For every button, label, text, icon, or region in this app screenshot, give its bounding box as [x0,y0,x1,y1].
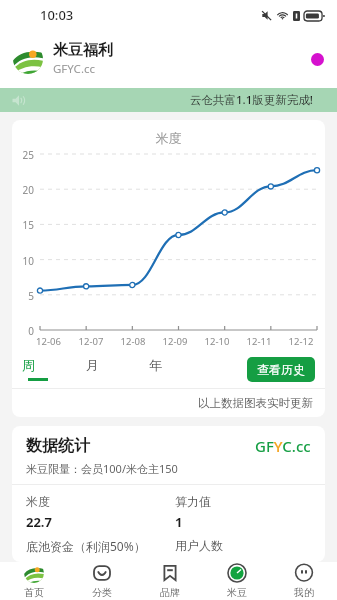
staticText: 首页 [24,586,44,599]
staticText: 用户人数 [175,538,325,553]
staticText: 12-08 [112,335,154,348]
staticText: 年 [149,357,162,373]
button[interactable]: Announcement [0,88,337,112]
staticText: 分类 [92,586,112,599]
staticText: 20 [12,183,34,197]
staticText: 月 [86,357,99,373]
staticText: 品牌 [160,586,180,599]
staticText: 25 [12,148,34,162]
staticText: 12-09 [154,335,196,348]
staticText: 数据统计 [26,436,90,456]
button[interactable]: 米豆 [203,562,270,600]
button[interactable]: Notifications [311,53,324,66]
staticText: 10:03 [40,6,74,24]
staticText: 12-07 [70,335,112,348]
staticText: 米度 [12,130,325,146]
button[interactable]: 周 [22,350,86,388]
staticText: 查看历史 [257,362,305,377]
staticText: 22.7 [26,513,52,531]
staticText: 云仓共富1.1版更新完成! [190,92,313,108]
staticText: 算力值 [175,494,211,509]
staticText: 12-11 [238,335,280,348]
button[interactable]: 首页 [0,562,68,600]
staticText: 底池资金（利润50%） [26,538,175,554]
button[interactable]: 月 [86,350,149,388]
staticText: 我的 [294,586,314,599]
staticText: 0 [12,324,34,338]
staticText: 5 [12,289,34,303]
staticText: 米度 [26,494,50,509]
staticText: 米豆福利 [53,41,113,60]
staticText: GFYC.cc [255,436,311,456]
button[interactable]: 分类 [68,562,136,600]
button[interactable]: 我的 [270,562,337,600]
other: Announcement [12,94,25,107]
button[interactable]: 品牌 [136,562,203,600]
staticText: 15 [12,218,34,232]
staticText: 12-06 [27,335,70,348]
staticText: GFYC.cc [53,61,96,77]
button[interactable]: 查看历史 [247,357,315,382]
staticText: 周 [22,357,35,373]
staticText: 以上数据图表实时更新 [198,396,313,410]
staticText: 12-12 [280,335,322,348]
staticText: 12-10 [196,335,238,348]
staticText: 米豆 [227,586,247,599]
button[interactable]: 年 [149,350,212,388]
staticText: 10 [12,254,34,268]
staticText: 1 [175,513,183,531]
staticText: 米豆限量：会员100/米仓主150 [26,461,178,476]
